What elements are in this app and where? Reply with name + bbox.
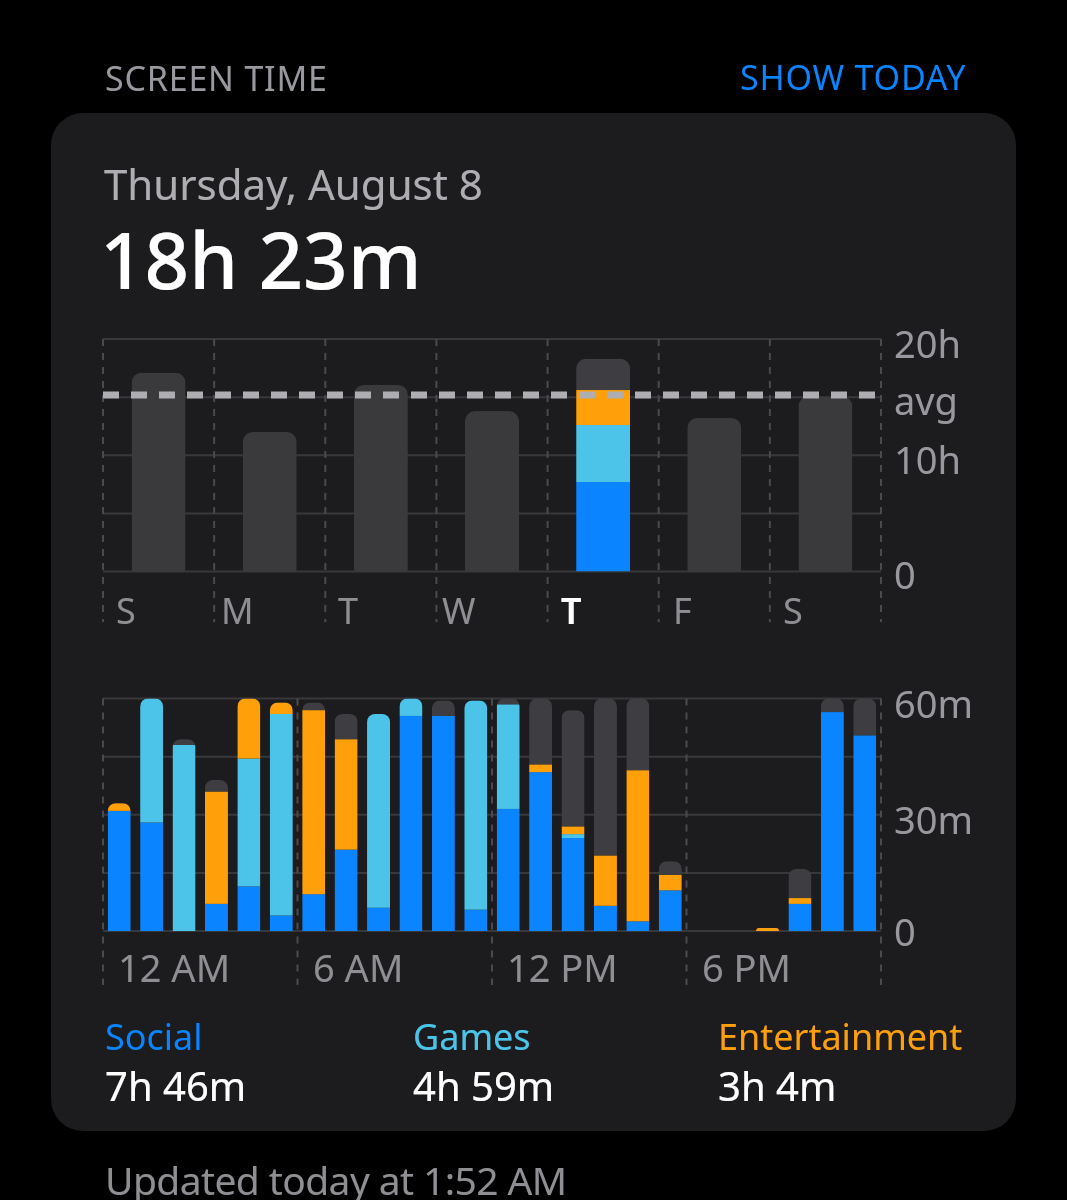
- staticText: M: [221, 586, 254, 630]
- staticText: Entertainment: [718, 1012, 963, 1061]
- staticText: 0: [894, 548, 916, 600]
- staticText: 10h: [894, 433, 961, 485]
- staticText: W: [442, 586, 476, 630]
- staticText: 6 AM: [313, 941, 404, 993]
- staticText: S: [783, 586, 803, 630]
- staticText: T: [561, 586, 582, 630]
- staticText: avg: [894, 374, 958, 426]
- button[interactable]: [51, 113, 1016, 1131]
- staticText: 20h: [894, 317, 961, 369]
- staticText: T: [338, 586, 359, 630]
- staticText: Social: [105, 1012, 203, 1061]
- staticText: Games: [413, 1012, 531, 1061]
- staticText: 30m: [894, 793, 974, 845]
- staticText: SCREEN TIME: [105, 55, 328, 101]
- staticText: 60m: [894, 677, 974, 729]
- staticText: 12 AM: [118, 941, 231, 993]
- staticText: 18h 23m: [100, 206, 422, 312]
- staticText: 7h 46m: [105, 1058, 247, 1112]
- staticText: 4h 59m: [413, 1058, 555, 1112]
- staticText: 0: [894, 905, 916, 957]
- staticText: F: [673, 586, 692, 630]
- button[interactable]: SHOW TODAY: [740, 54, 967, 100]
- staticText: SHOW TODAY: [740, 54, 967, 100]
- staticText: Thursday, August 8: [104, 155, 483, 212]
- staticText: Updated today at 1:52 AM: [105, 1153, 567, 1200]
- staticText: S: [116, 586, 136, 630]
- staticText: 3h 4m: [718, 1058, 837, 1112]
- staticText: 6 PM: [702, 941, 792, 993]
- staticText: 12 PM: [507, 941, 618, 993]
